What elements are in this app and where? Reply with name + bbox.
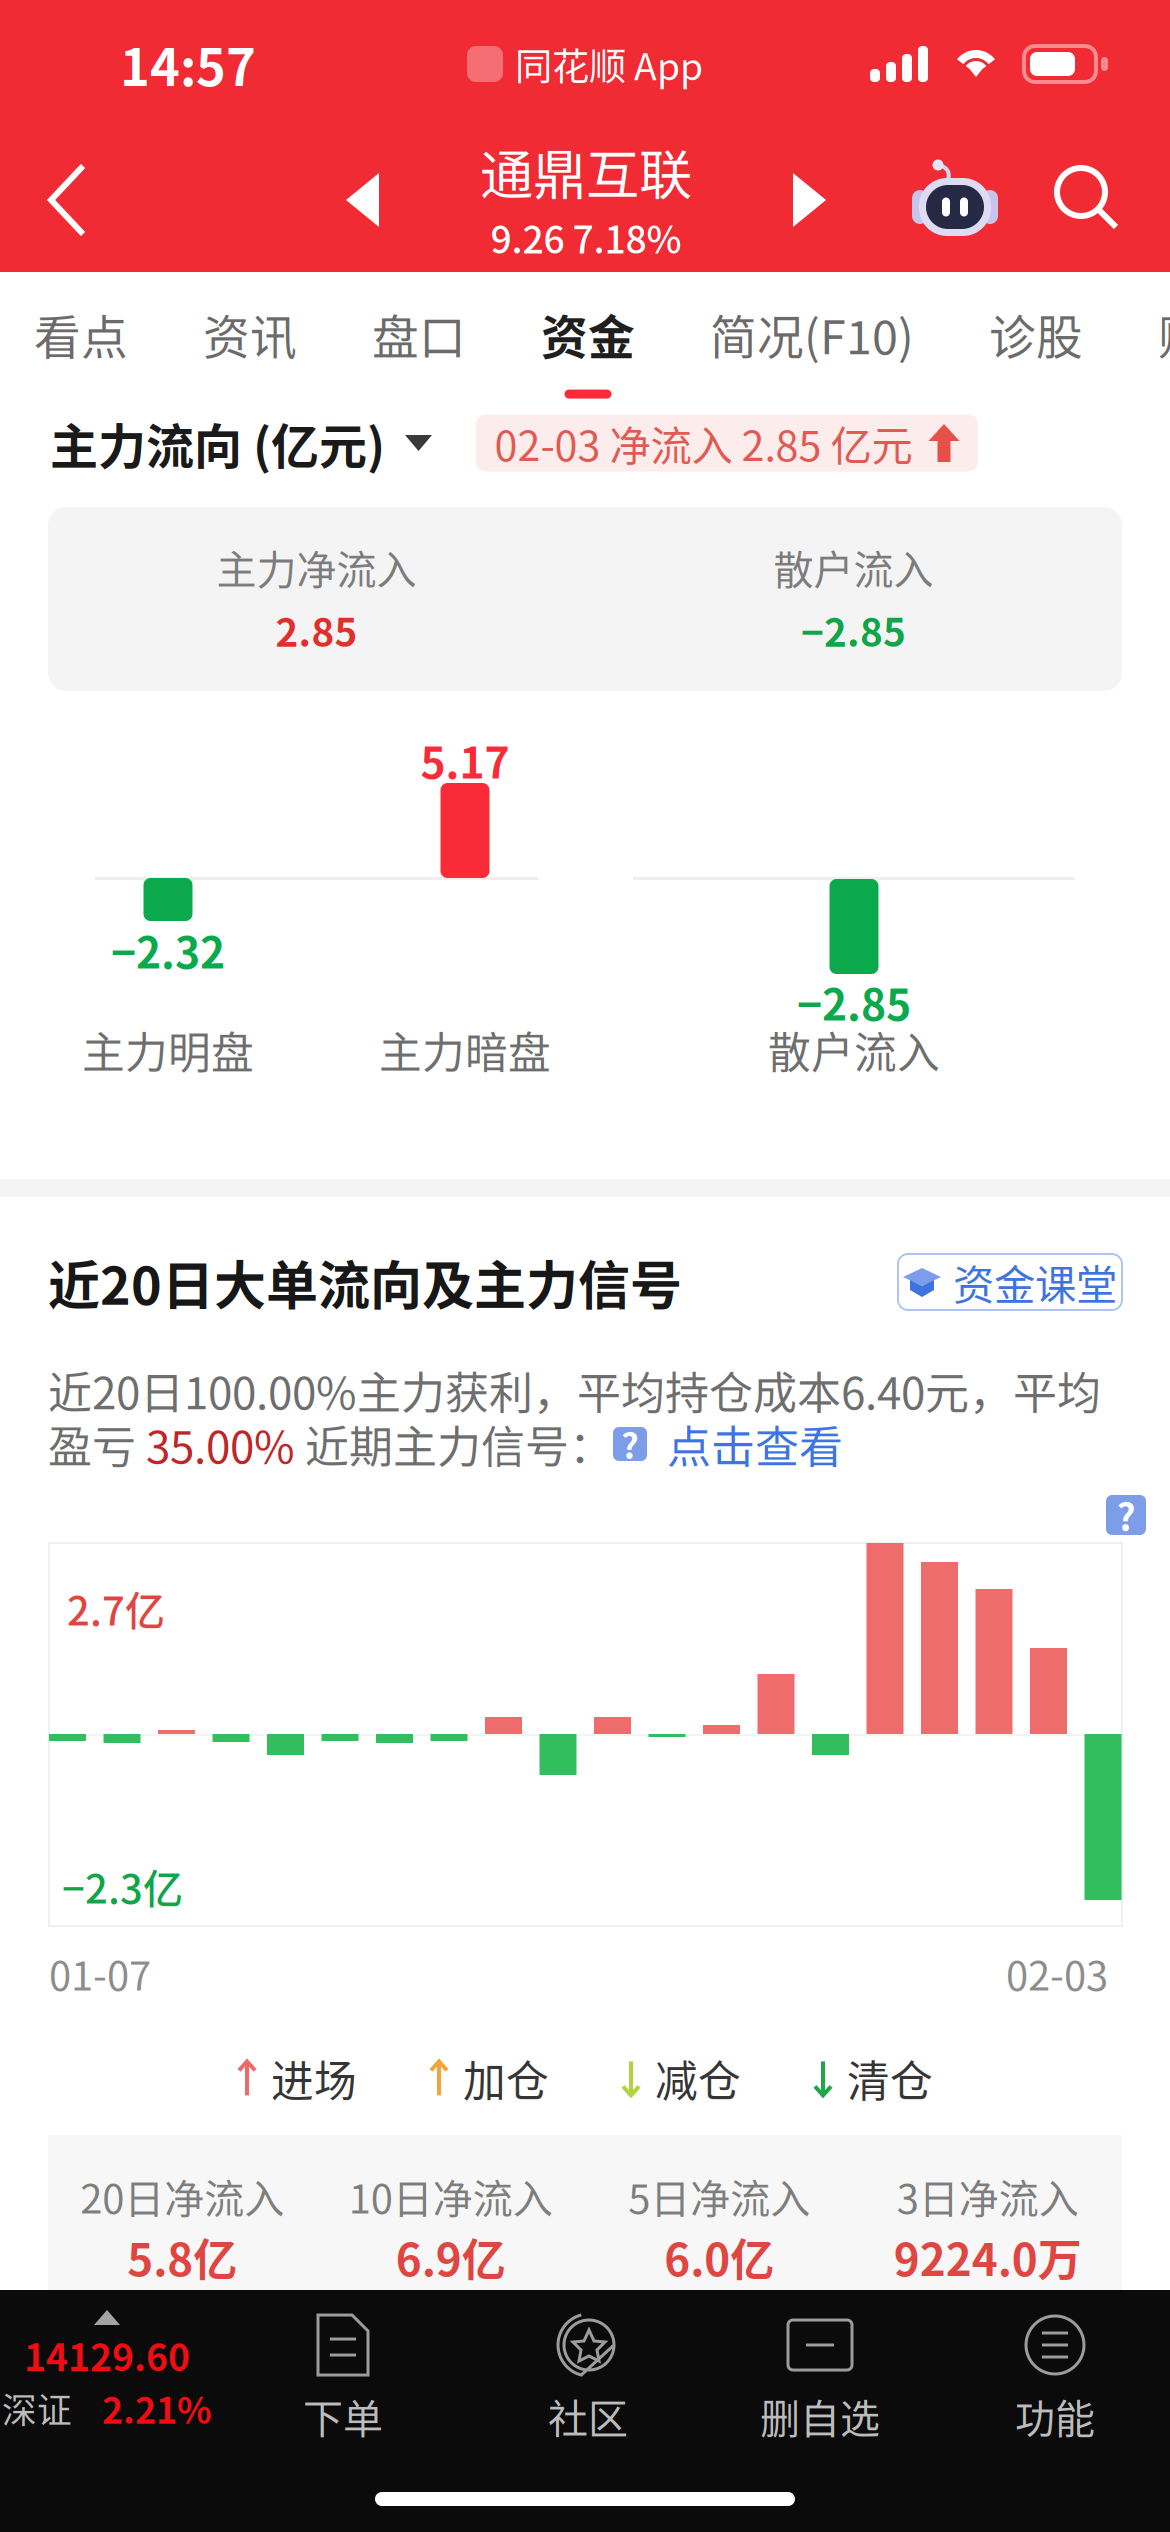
staticText: ? [621, 1419, 639, 1469]
staticText: 02-03 净流入 2.85 亿元 [494, 413, 912, 473]
staticText: 看点 [34, 300, 128, 368]
button[interactable]: 简况(F10) [710, 272, 989, 400]
button[interactable]: 下一只 [793, 128, 863, 272]
staticText: 减仓 [655, 2047, 741, 2109]
staticText: 主力明盘 [82, 1019, 254, 1081]
staticText: 深证 [2, 2383, 72, 2433]
staticText: 35.00% [146, 1412, 295, 1476]
staticText: 散户流入 [773, 538, 933, 596]
staticText: 清仓 [847, 2047, 933, 2109]
button[interactable]: 功能 [936, 2290, 1170, 2450]
button[interactable]: 搜索 [998, 128, 1124, 272]
staticText: 9224.0万 [894, 2225, 1082, 2289]
staticText: 近期主力信号： [295, 1412, 613, 1476]
staticText: 主力流向 (亿元) [50, 408, 385, 478]
staticText: 5日净流入 [628, 2167, 810, 2225]
staticText: 进场 [271, 2047, 357, 2109]
button[interactable]: 删自选 [704, 2290, 936, 2450]
staticText: 6.0亿 [664, 2225, 774, 2289]
button[interactable]: 14129.60 [0, 2290, 214, 2450]
staticText: 主力暗盘 [379, 1019, 551, 1081]
staticText: 同花顺 App [515, 37, 703, 91]
staticText: 2.85 [275, 602, 357, 658]
staticText: 14129.60 [24, 2328, 190, 2382]
button[interactable]: 财 [1158, 272, 1170, 400]
staticText: 10日净流入 [349, 2167, 553, 2225]
button[interactable]: 社区 [472, 2290, 704, 2450]
staticText: 社区 [548, 2387, 628, 2445]
staticText: 盈亏 [48, 1412, 146, 1476]
staticText: 5.17 [420, 729, 509, 791]
staticText: 加仓 [463, 2047, 549, 2109]
staticText: −2.3亿 [62, 1857, 183, 1915]
staticText: 散户流入 [768, 1019, 940, 1081]
staticText: 2.7亿 [67, 1579, 165, 1637]
staticText: 诊股 [989, 300, 1083, 368]
staticText: −2.85 [797, 971, 911, 1033]
staticText: 下单 [303, 2387, 383, 2445]
staticText: 20日净流入 [80, 2167, 284, 2225]
button[interactable]: 诊股 [989, 272, 1158, 400]
staticText: 2.21% [102, 2382, 212, 2434]
staticText: 6.9亿 [396, 2225, 506, 2289]
staticText: −2.32 [111, 919, 225, 981]
staticText: 02-03 [1006, 1944, 1108, 2002]
button[interactable]: 返回 [0, 128, 95, 272]
button[interactable]: 看点 [34, 272, 203, 400]
button[interactable]: 下单 [214, 2290, 472, 2450]
staticText: 14:57 [120, 27, 256, 101]
staticText: 资金 [541, 300, 635, 368]
staticText: 资讯 [203, 300, 297, 368]
staticText: −2.85 [801, 602, 906, 658]
button[interactable]: 上一只 [95, 128, 379, 272]
staticText: 主力净流入 [216, 538, 416, 596]
button[interactable]: 点击查看 [647, 1412, 843, 1476]
staticText: 功能 [1015, 2387, 1095, 2445]
button[interactable]: 资金 [541, 272, 710, 400]
staticText: 盘口 [372, 300, 466, 368]
staticText: 简况(F10) [710, 300, 914, 368]
staticText: 9.26 7.18% [490, 210, 681, 264]
button[interactable]: 资金课堂 [898, 1254, 1122, 1310]
button[interactable]: 主力流向 (亿元) [50, 400, 432, 486]
button[interactable]: 智能助手 [863, 128, 998, 272]
staticText: 5.8亿 [127, 2225, 237, 2289]
staticText: 近20日100.00%主力获利，平均持仓成本6.40元，平均 [48, 1358, 1101, 1422]
staticText: ? [1116, 1488, 1135, 1542]
staticText: 点击查看 [647, 1412, 843, 1476]
button[interactable]: 盘口 [372, 272, 541, 400]
button[interactable]: 通鼎互联 [379, 128, 793, 272]
staticText: 财 [1158, 300, 1170, 368]
button[interactable]: 02-03 净流入 2.85 亿元 [476, 400, 978, 486]
staticText: 01-07 [49, 1944, 151, 2002]
staticText: 删自选 [760, 2387, 880, 2445]
button[interactable]: 资讯 [203, 272, 372, 400]
staticText: 3日净流入 [897, 2167, 1079, 2225]
staticText: 通鼎互联 [480, 133, 692, 210]
staticText: 近20日大单流向及主力信号 [48, 1244, 682, 1320]
staticText: 资金课堂 [953, 1252, 1117, 1312]
